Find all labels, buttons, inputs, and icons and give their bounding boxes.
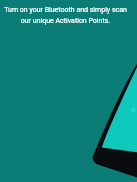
- staticText: Turn on your Bluetooth and simply scan o…: [4, 6, 127, 25]
